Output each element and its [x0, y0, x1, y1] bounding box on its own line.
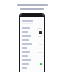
button[interactable]: Open item: [39, 31, 42, 34]
button[interactable]: Enabled: [40, 63, 42, 65]
button[interactable]: [20, 42, 44, 46]
button[interactable]: [20, 46, 44, 50]
button[interactable]: [20, 38, 44, 42]
button[interactable]: Enabled: [20, 62, 44, 66]
button[interactable]: [20, 58, 44, 62]
button[interactable]: [20, 19, 44, 23]
button[interactable]: [20, 26, 44, 30]
button[interactable]: [20, 66, 44, 70]
button[interactable]: [20, 34, 44, 38]
button[interactable]: [20, 54, 44, 58]
button[interactable]: Open item: [20, 30, 44, 34]
button[interactable]: [20, 50, 44, 54]
